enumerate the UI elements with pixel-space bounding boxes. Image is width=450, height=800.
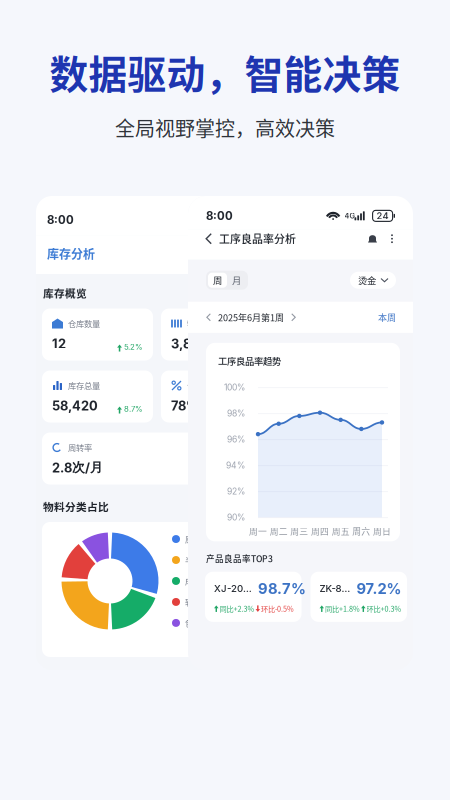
staticText: 2025年6月第1周 xyxy=(218,311,284,324)
staticText: 8:00 xyxy=(47,213,74,227)
staticText: 物料分类占比 xyxy=(43,498,109,514)
button[interactable]: 返回 xyxy=(205,230,219,248)
staticText: 库存总量 xyxy=(68,379,100,391)
staticText: 12 xyxy=(52,336,66,351)
staticText: XJ-20… xyxy=(214,583,252,594)
staticText: 同比+2.3% xyxy=(220,603,255,614)
staticText: 周五 xyxy=(332,524,350,537)
staticText: 环比+0.3% xyxy=(367,603,402,614)
staticText: 合格率 xyxy=(187,379,211,391)
button[interactable]: 烫金 xyxy=(350,272,396,289)
staticText: 周转率 xyxy=(68,441,92,453)
staticText: 库存概览 xyxy=(43,285,87,300)
staticText: 97.2% xyxy=(356,580,401,597)
staticText: 数据驱动，智能决策 xyxy=(49,44,400,100)
button[interactable]: 周 xyxy=(208,273,227,288)
staticText: 库存分析 xyxy=(47,245,95,262)
staticText: 周二 xyxy=(270,524,288,537)
staticText: 78% xyxy=(171,398,199,413)
staticText: 包材 xyxy=(185,617,201,629)
staticText: 92% xyxy=(227,486,245,496)
staticText: 8.7% xyxy=(124,404,143,414)
button[interactable]: 月 xyxy=(227,273,246,288)
staticText: 周日 xyxy=(373,524,391,537)
staticText: 原材料 xyxy=(185,533,209,545)
staticText: 物料种类 xyxy=(187,317,219,329)
staticText: 24 xyxy=(377,210,389,221)
staticText: ZK-8… xyxy=(319,583,350,594)
staticText: 全局视野掌控，高效决策 xyxy=(115,113,335,142)
staticText: 98.7% xyxy=(258,580,306,597)
staticText: 工序良品率分析 xyxy=(219,231,296,247)
staticText: 2.8次/月 xyxy=(52,459,103,475)
staticText: 5.2% xyxy=(124,342,143,352)
button[interactable]: 库存分析 xyxy=(36,236,278,274)
button[interactable]: 上一周 xyxy=(206,314,218,321)
staticText: 烫金 xyxy=(358,273,376,287)
staticText: 3,860 xyxy=(171,336,208,351)
button[interactable]: 本周 xyxy=(378,311,396,324)
button[interactable]: 下一周 xyxy=(284,314,296,321)
staticText: 本周 xyxy=(378,311,396,324)
staticText: 工序良品率趋势 xyxy=(218,354,281,367)
staticText: 58,420 xyxy=(52,398,98,413)
staticText: 周 xyxy=(213,273,222,287)
staticText: 周一 xyxy=(249,524,267,537)
staticText: 月 xyxy=(232,273,241,287)
staticText: 环比-0.5% xyxy=(261,603,294,614)
staticText: 仓库数量 xyxy=(68,317,100,329)
staticText: 产品良品率TOP3 xyxy=(206,552,273,565)
staticText: 同比+1.8% xyxy=(325,603,360,614)
staticText: 半成品 xyxy=(185,554,209,566)
staticText: 94% xyxy=(226,460,245,470)
staticText: 4G xyxy=(345,211,355,220)
button[interactable]: 更多 xyxy=(381,233,397,244)
staticText: 100% xyxy=(224,382,245,392)
staticText: 8:00 xyxy=(206,209,233,223)
staticText: 90% xyxy=(227,512,245,522)
button[interactable]: 通知 xyxy=(364,233,381,244)
staticText: 成品 xyxy=(185,575,201,587)
staticText: 98% xyxy=(227,408,245,418)
staticText: 96% xyxy=(227,434,245,444)
staticText: 周三 xyxy=(290,524,308,537)
staticText: 辅料 xyxy=(185,596,201,608)
staticText: 周四 xyxy=(311,524,329,537)
staticText: 周六 xyxy=(352,524,370,537)
